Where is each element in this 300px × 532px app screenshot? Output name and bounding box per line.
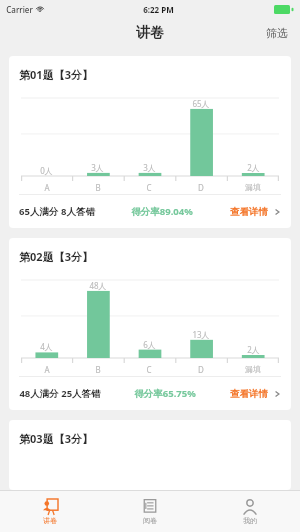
button[interactable]: 阅卷 [100,491,200,532]
button[interactable]: 讲卷 [0,491,100,532]
staticText: B [95,182,101,193]
staticText: 查看详情 [230,206,268,218]
staticText: 得分率89.04% [131,205,193,218]
staticText: B [95,364,101,375]
staticText: D [198,364,204,375]
staticText: 48人 [89,280,107,291]
staticText: 阅卷 [143,516,157,525]
staticText: A [44,182,50,193]
staticText: C [146,364,152,375]
staticText: Carrier [6,4,33,15]
staticText: A [44,364,50,375]
staticText: 得分率65.75% [134,387,196,400]
staticText: D [198,182,204,193]
staticText: 48人满分 25人答错 [19,387,101,400]
staticText: 我的 [243,516,257,525]
staticText: C [146,182,152,193]
staticText: 2人 [247,344,260,355]
staticText: 4人 [40,341,53,352]
staticText: 查看详情 [230,388,268,400]
staticText: 6人 [143,339,156,350]
staticText: 0人 [40,165,53,176]
staticText: 第01题【3分】 [19,67,93,82]
staticText: 讲卷 [43,516,57,525]
staticText: 3人 [91,162,104,173]
button[interactable]: 查看详情 [230,206,281,218]
button[interactable]: 查看详情 [230,388,281,400]
staticText: 第03题【3分】 [19,431,93,446]
staticText: 65人满分 8人答错 [19,205,95,218]
staticText: 漏填 [245,182,261,192]
staticText: 3人 [143,162,156,173]
staticText: 65人 [192,98,210,109]
staticText: 漏填 [245,364,261,374]
staticText: 6:22 PM [143,4,174,15]
button[interactable]: 筛选 [254,19,300,47]
staticText: 筛选 [266,26,288,40]
staticText: 13人 [192,329,210,340]
staticText: 2人 [247,162,260,173]
button[interactable]: 我的 [200,491,300,532]
staticText: 讲卷 [136,24,164,42]
staticText: 第02题【3分】 [19,249,93,264]
